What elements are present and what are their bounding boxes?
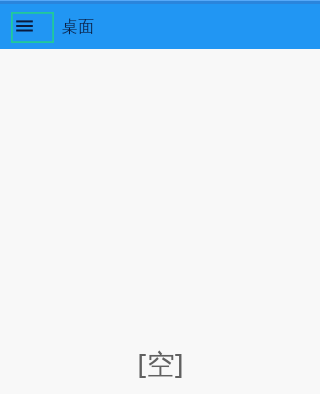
staticText: 桌面 bbox=[62, 17, 94, 37]
staticText: [空] bbox=[137, 344, 184, 382]
button[interactable]: Open navigation menu bbox=[11, 12, 54, 43]
